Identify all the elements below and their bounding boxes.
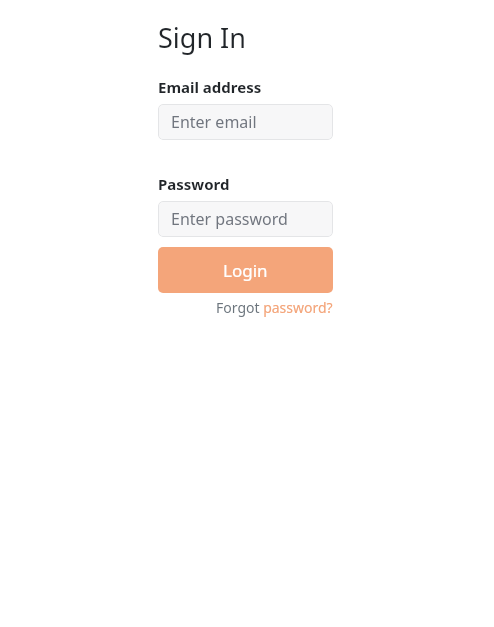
button[interactable]: Enter email: [158, 104, 333, 140]
staticText: Forgot password?: [216, 298, 333, 317]
staticText: Password: [158, 174, 230, 194]
staticText: Sign In: [158, 19, 246, 56]
button[interactable]: Enter password: [158, 201, 333, 237]
staticText: Enter email: [171, 111, 257, 133]
staticText: Enter password: [171, 208, 288, 230]
staticText: Email address: [158, 77, 262, 97]
staticText: Login: [223, 259, 268, 282]
button[interactable]: Forgot password?: [216, 298, 333, 317]
button[interactable]: Login: [158, 247, 333, 293]
